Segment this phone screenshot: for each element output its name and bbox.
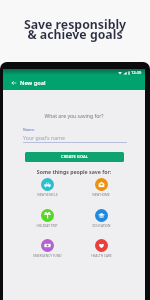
staticText: EMERGENCY FUND [33,254,62,258]
button[interactable]: HOLIDAY TRIP [23,209,71,228]
staticText: NEW VEHICLE [37,193,58,197]
staticText: New goal [20,79,46,87]
staticText: NEW HOME [92,193,110,197]
button[interactable]: HEALTH CARE [77,239,125,258]
staticText: Some things people save for: [3,168,145,175]
button[interactable]: EMERGENCY FUND [23,239,71,258]
staticText: 12:30 [131,70,142,75]
staticText: Name: [23,127,35,132]
staticText: Your goal's name [23,134,65,141]
button[interactable]: EDUCATION [77,209,125,228]
staticText: Save responsibly & achieve goals [0,16,150,43]
button[interactable]: NEW HOME [77,178,125,197]
staticText: HEALTH CARE [91,254,112,258]
button[interactable]: NEW VEHICLE [23,178,71,197]
staticText: HOLIDAY TRIP [36,224,58,228]
button[interactable]: CREATE GOAL [25,152,124,162]
staticText: CREATE GOAL [61,154,89,160]
button[interactable]: Back [8,75,20,90]
staticText: EDUCATION [92,224,111,228]
staticText: What are you saving for? [3,113,145,120]
